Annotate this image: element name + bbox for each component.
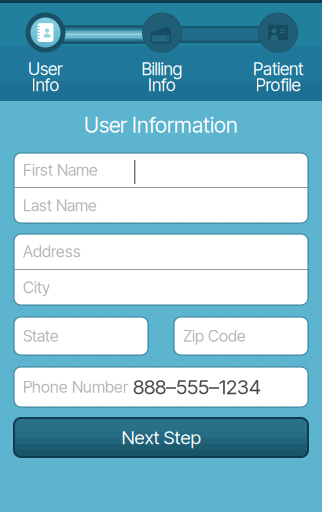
staticText: 888–555–1234: [133, 375, 261, 399]
staticText: Billing: [141, 58, 182, 79]
staticText: User: [28, 58, 63, 79]
staticText: City: [23, 278, 50, 297]
staticText: Phone Number: [23, 377, 128, 397]
staticText: First Name: [23, 160, 98, 180]
staticText: Last Name: [23, 196, 97, 215]
staticText: Info: [148, 74, 176, 95]
staticText: Zip Code: [183, 326, 246, 346]
staticText: Info: [31, 74, 59, 95]
staticText: State: [23, 326, 59, 346]
staticText: Next Step: [121, 426, 200, 449]
staticText: Address: [23, 242, 81, 261]
button[interactable]: Next Step: [14, 418, 308, 457]
staticText: Profile: [255, 74, 300, 95]
staticText: Patient: [253, 58, 303, 79]
staticText: User Information: [84, 112, 238, 138]
